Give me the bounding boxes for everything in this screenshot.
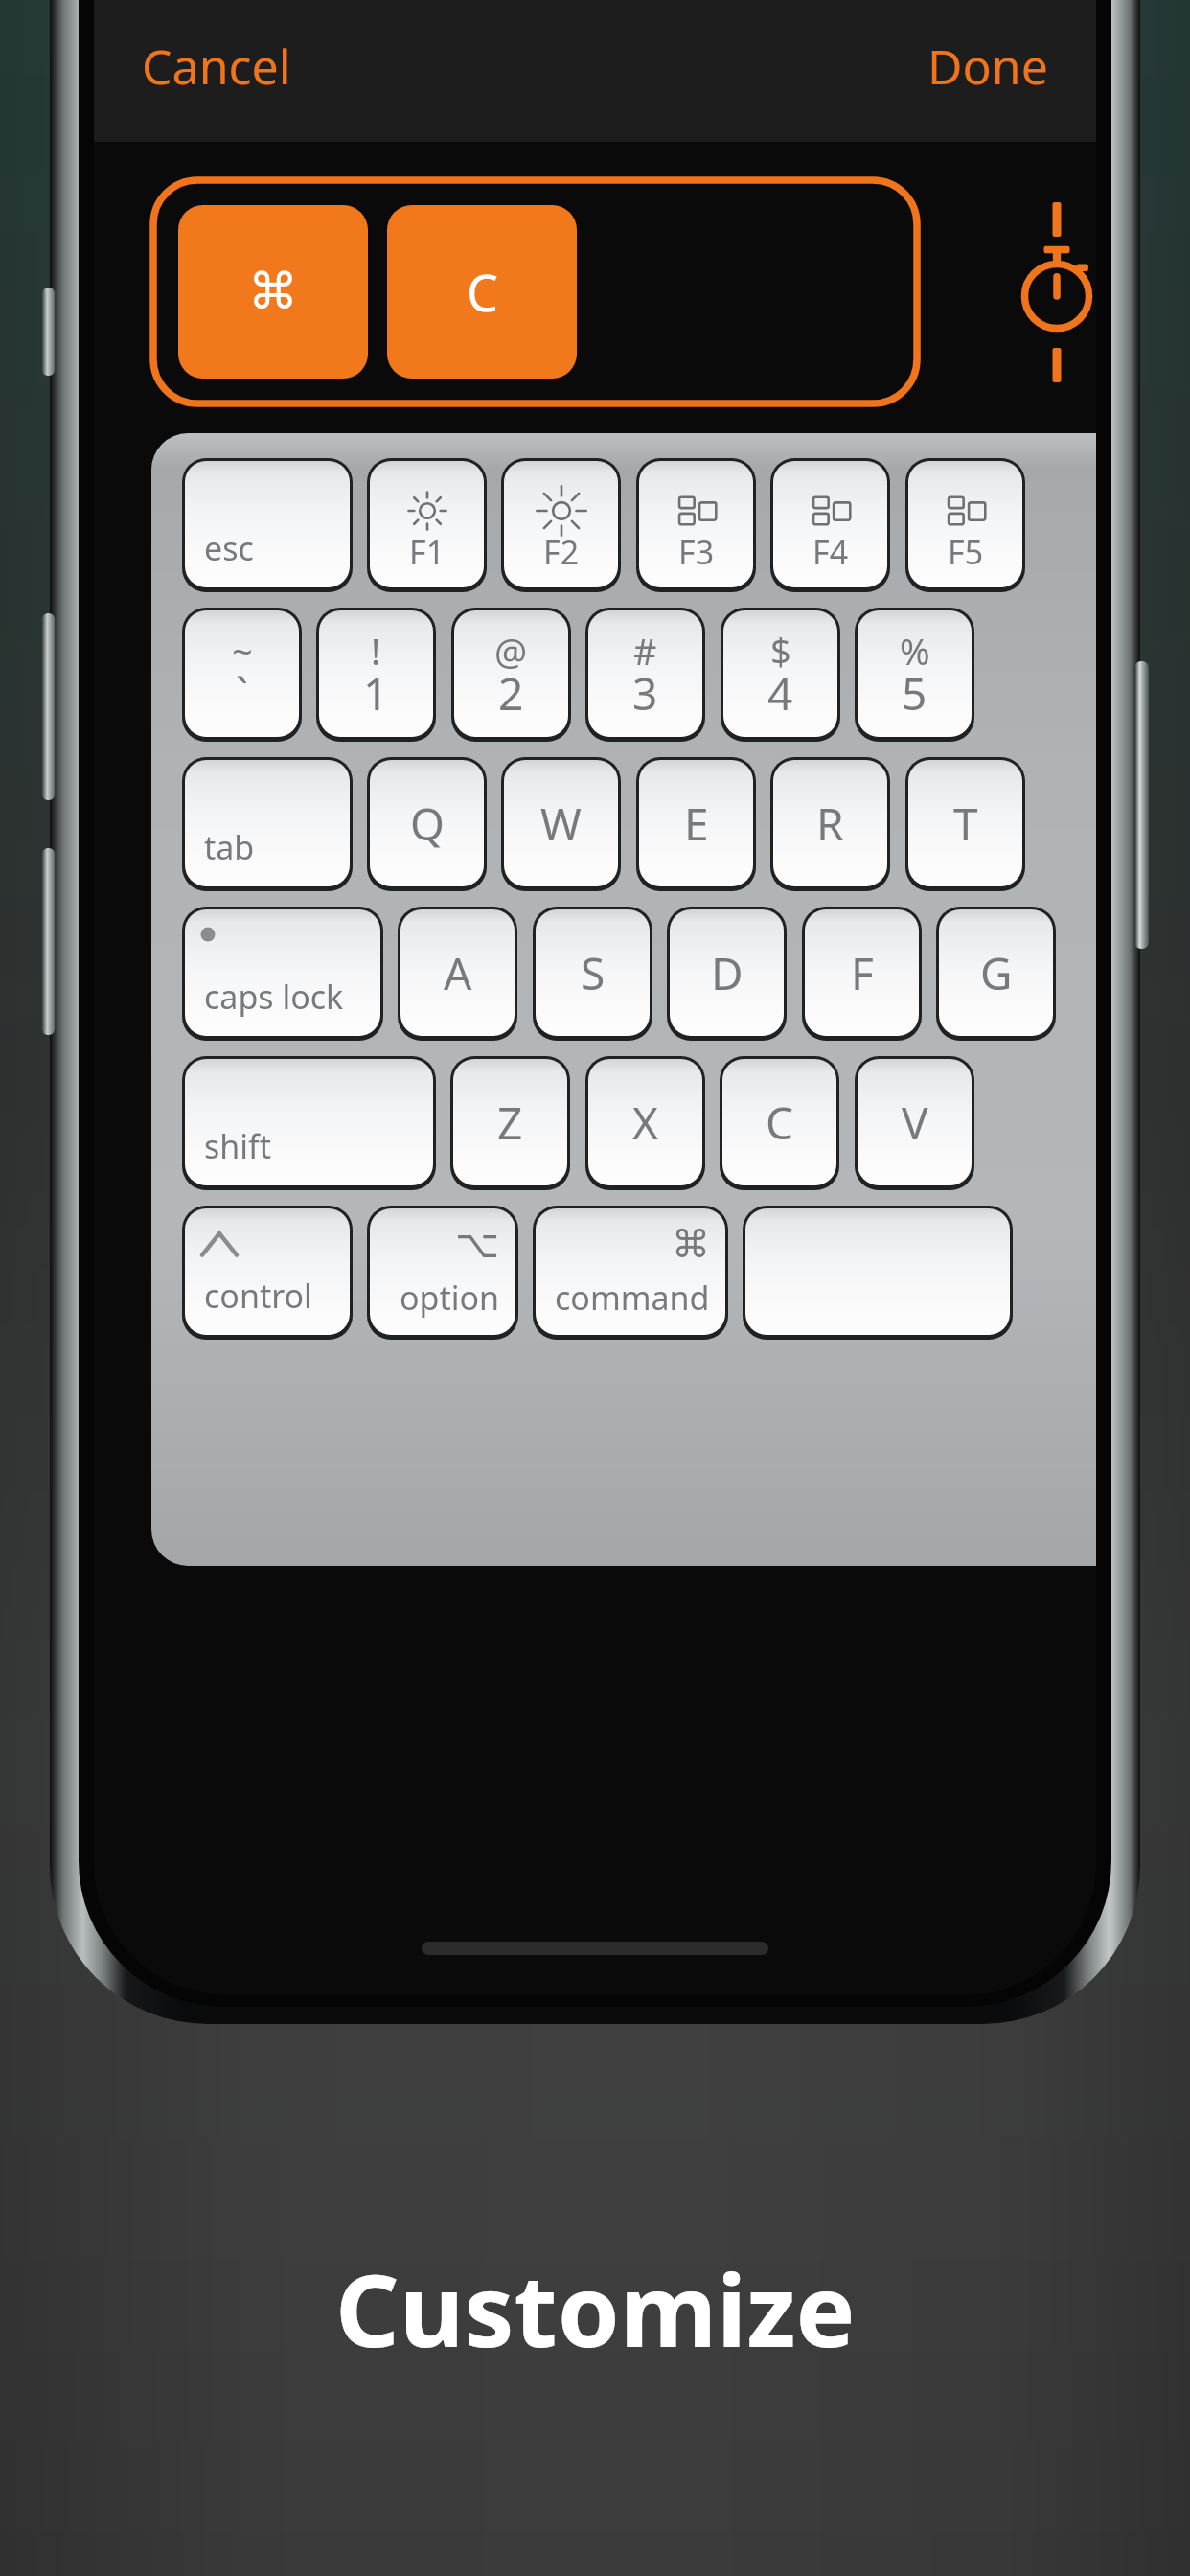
staticText: command [555,1276,710,1320]
button[interactable]: F4 [770,458,890,592]
staticText: 2 [498,663,524,724]
staticText: Customize [335,2241,856,2377]
button[interactable]: E [636,757,756,891]
staticText: R [816,793,844,854]
button[interactable]: control [182,1206,353,1340]
staticText: V [902,1092,928,1153]
staticText: ! [371,626,381,676]
staticText: T [953,793,978,854]
button[interactable]: Timing [985,180,1096,403]
staticText: G [980,943,1013,1003]
staticText: A [444,943,472,1003]
staticText: caps lock [204,975,344,1019]
button[interactable]: C [387,205,577,379]
button[interactable]: F2 [501,458,621,592]
button[interactable]: # [585,608,705,742]
staticText: control [204,1274,312,1318]
button[interactable]: $ [721,608,840,742]
staticText: 4 [767,663,793,724]
button[interactable] [743,1206,1013,1340]
button[interactable]: F5 [905,458,1025,592]
staticText: Done [927,34,1048,99]
button[interactable]: Q [367,757,487,891]
staticText: C [766,1092,794,1153]
button[interactable]: ⌥ [367,1206,518,1340]
staticText: ⌘ [248,263,298,321]
button[interactable]: V [855,1056,974,1190]
button[interactable]: C [720,1056,839,1190]
staticText: ~ [232,626,253,676]
button[interactable]: F1 [367,458,487,592]
button[interactable]: T [905,757,1025,891]
button[interactable]: caps lock [182,907,383,1041]
staticText: X [632,1092,658,1153]
button[interactable]: @ [451,608,571,742]
button[interactable]: % [855,608,974,742]
button[interactable]: Cancel [94,7,339,126]
button[interactable]: A [398,907,517,1041]
button[interactable]: ⌘ [153,180,917,403]
button[interactable]: D [667,907,787,1041]
staticText: F1 [409,530,446,574]
button[interactable]: Done [880,7,1096,126]
button[interactable]: shift [182,1056,436,1190]
staticText: 3 [632,663,658,724]
staticText: # [633,626,657,676]
staticText: ⌥ [455,1222,500,1267]
staticText: F [851,943,874,1003]
staticText: W [540,793,582,854]
button[interactable]: X [585,1056,705,1190]
button[interactable]: W [501,757,621,891]
staticText: ` [236,663,248,724]
staticText: shift [204,1124,272,1168]
staticText: F2 [543,530,580,574]
staticText: 5 [902,663,927,724]
button[interactable]: ~ [182,608,302,742]
staticText: esc [204,526,254,570]
staticText: % [900,626,930,676]
staticText: E [684,793,709,854]
button[interactable]: ⌘ [178,205,368,379]
staticText: D [711,943,744,1003]
button[interactable]: G [936,907,1056,1041]
staticText: ⌘ [672,1222,710,1267]
button[interactable]: tab [182,757,353,891]
staticText: F3 [678,530,715,574]
staticText: option [400,1276,500,1320]
button[interactable]: R [770,757,890,891]
staticText: $ [770,626,791,676]
staticText: Cancel [142,34,291,99]
staticText: S [581,943,606,1003]
staticText: @ [494,626,528,676]
staticText: Z [497,1092,523,1153]
button[interactable]: S [533,907,652,1041]
staticText: F4 [812,530,849,574]
staticText: 1 [363,663,389,724]
staticText: Q [410,793,445,854]
button[interactable]: ⌘ [533,1206,728,1340]
button[interactable]: ! [316,608,436,742]
staticText: F5 [948,530,984,574]
button[interactable]: esc [182,458,353,592]
button[interactable]: F3 [636,458,756,592]
staticText: C [467,258,498,326]
button[interactable]: Z [450,1056,570,1190]
staticText: tab [204,825,255,869]
button[interactable]: F [802,907,922,1041]
